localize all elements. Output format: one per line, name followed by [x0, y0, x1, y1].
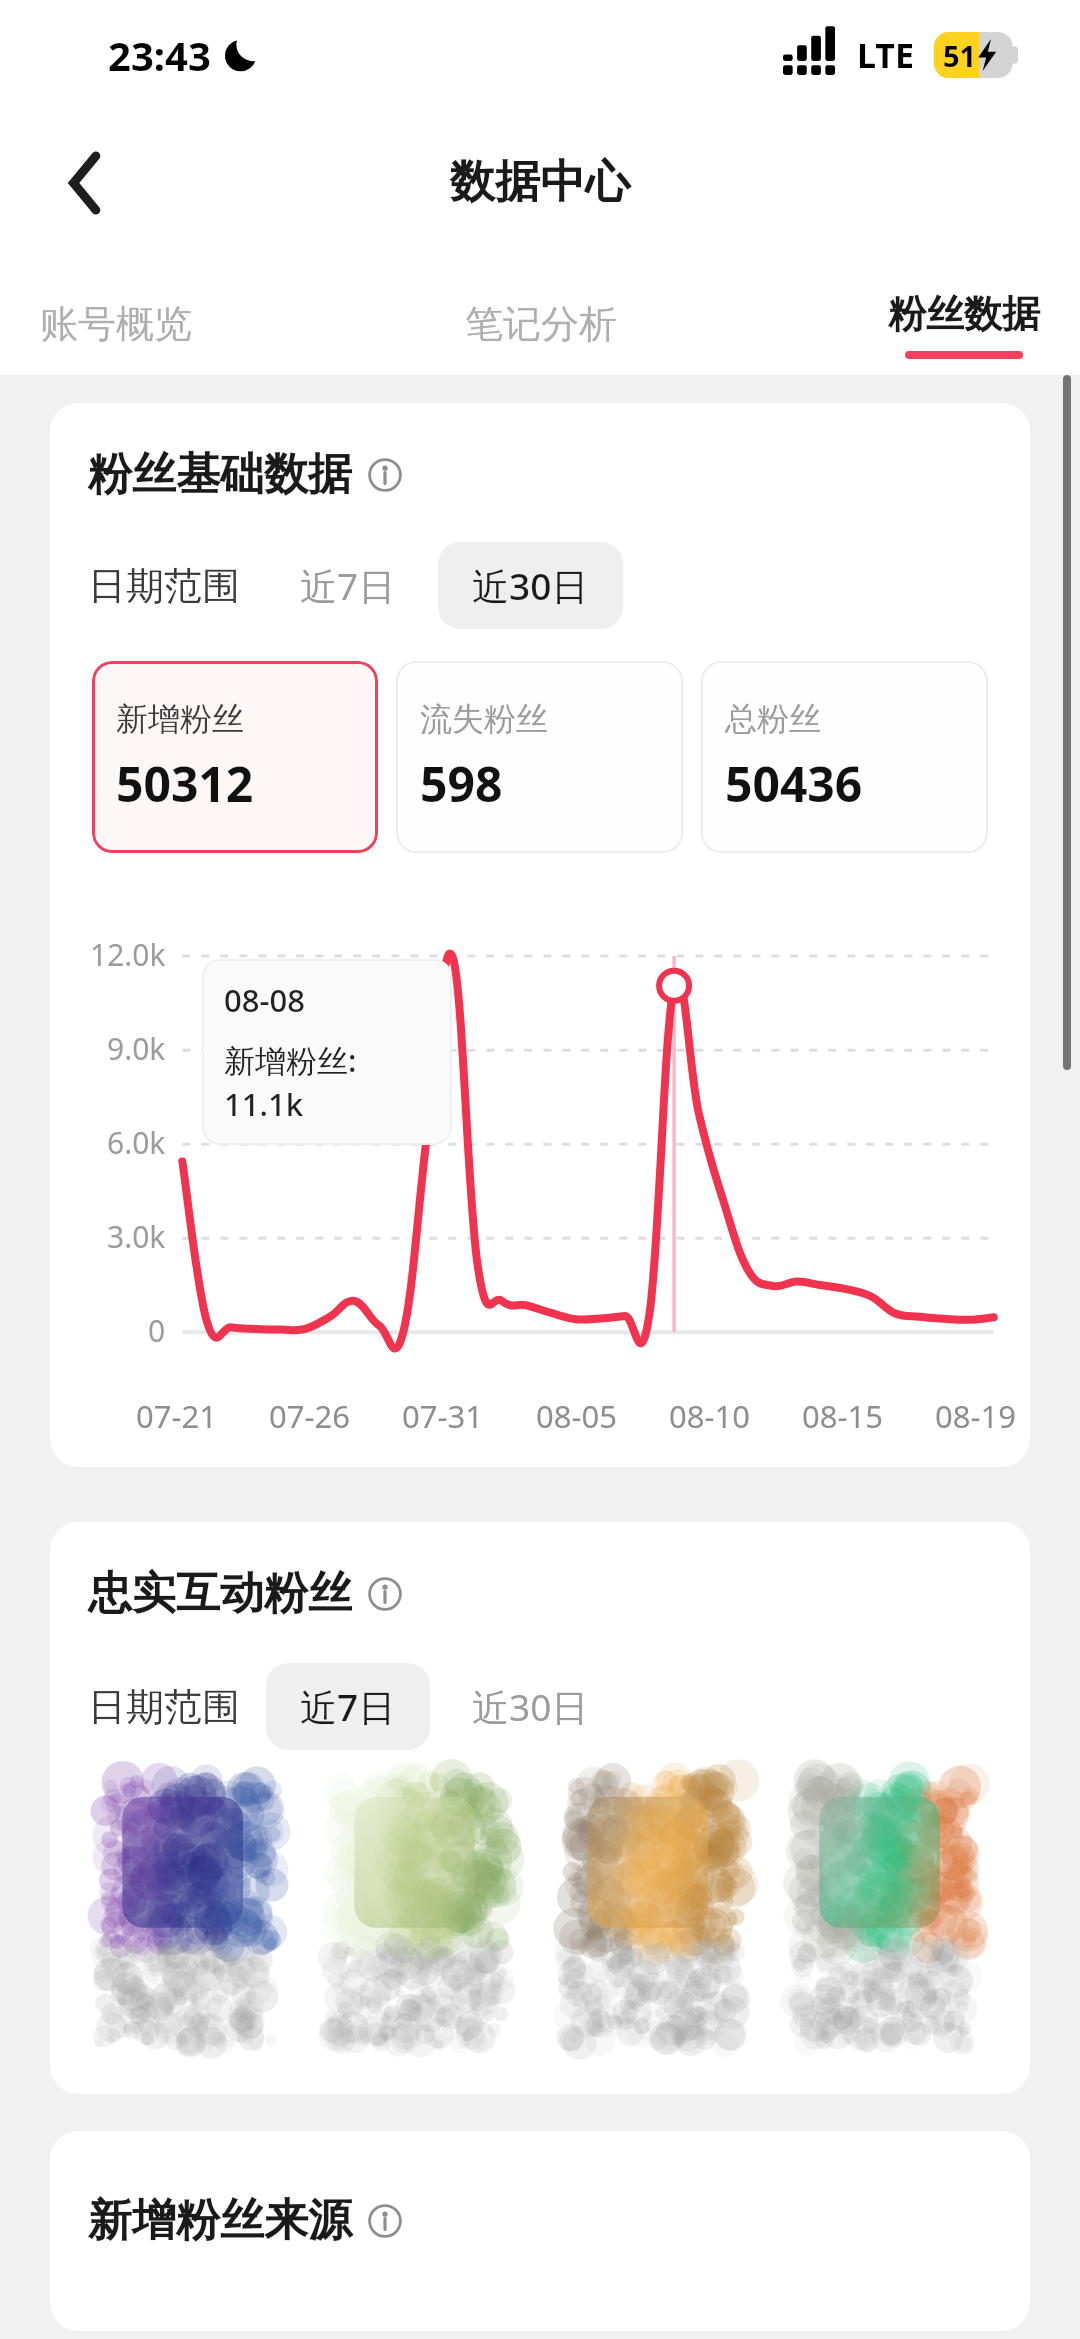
staticText: 07-21: [136, 1395, 217, 1437]
staticText: 07-31: [402, 1395, 483, 1437]
staticText: 23:43: [108, 28, 211, 82]
staticText: 08-15: [802, 1395, 883, 1437]
button[interactable]: 粉丝: [549, 1774, 764, 2074]
button[interactable]: 近30日: [438, 1663, 623, 1750]
button[interactable]: 新增粉丝: [92, 661, 378, 853]
button[interactable]: 近30日: [438, 542, 623, 629]
staticText: 粉丝基础数据: [88, 447, 352, 502]
button[interactable]: 近7日: [266, 1663, 430, 1750]
staticText: 近30日: [472, 1681, 589, 1732]
other: Info: [368, 1577, 402, 1611]
staticText: 新增粉丝: 11.1k: [224, 1039, 430, 1125]
button[interactable]: 总粉丝: [701, 661, 988, 853]
staticText: 账号概览: [40, 300, 192, 348]
staticText: 流失粉丝: [420, 699, 548, 739]
other: Info: [368, 458, 402, 492]
button[interactable]: 粉丝基础数据: [88, 447, 402, 502]
button[interactable]: 近7日: [266, 542, 430, 629]
staticText: 08-19: [935, 1395, 1016, 1437]
staticText: 日期范围: [88, 1683, 240, 1731]
staticText: 新增粉丝来源: [88, 2193, 352, 2248]
staticText: 08-08: [224, 979, 305, 1021]
staticText: 598: [420, 751, 503, 816]
staticText: 0: [148, 1310, 166, 1351]
button[interactable]: 忠实互动粉丝: [88, 1566, 402, 1621]
other: Info: [368, 2204, 402, 2238]
staticText: LTE: [857, 32, 914, 78]
staticText: 新增粉丝: [116, 699, 244, 739]
button[interactable]: 粉丝: [84, 1774, 299, 2074]
staticText: 笔记分析: [465, 300, 617, 348]
staticText: 3.0k: [107, 1216, 166, 1257]
staticText: 数据中心: [450, 154, 630, 211]
staticText: 08-05: [536, 1395, 617, 1437]
staticText: 粉丝数据: [888, 290, 1040, 338]
staticText: 日期范围: [88, 562, 240, 610]
staticText: 50436: [725, 751, 863, 816]
staticText: 近7日: [300, 1681, 396, 1732]
button[interactable]: Back: [30, 128, 140, 238]
staticText: 9.0k: [107, 1028, 166, 1069]
button[interactable]: 粉丝: [316, 1774, 531, 2074]
button[interactable]: 粉丝数据: [707, 255, 1040, 375]
button[interactable]: 流失粉丝: [396, 661, 683, 853]
button[interactable]: 新增粉丝来源: [88, 2193, 402, 2248]
staticText: 近30日: [472, 560, 589, 611]
staticText: 12.0k: [90, 934, 166, 975]
button[interactable]: 笔记分析: [374, 255, 707, 375]
staticText: 6.0k: [107, 1122, 166, 1163]
button[interactable]: 粉丝: [781, 1774, 996, 2074]
staticText: 07-26: [269, 1395, 350, 1437]
staticText: 忠实互动粉丝: [88, 1566, 352, 1621]
staticText: 51: [943, 36, 977, 75]
staticText: 近7日: [300, 560, 396, 611]
button[interactable]: 账号概览: [40, 255, 374, 375]
staticText: 08-10: [669, 1395, 750, 1437]
staticText: 总粉丝: [725, 699, 821, 739]
staticText: 50312: [116, 751, 254, 816]
